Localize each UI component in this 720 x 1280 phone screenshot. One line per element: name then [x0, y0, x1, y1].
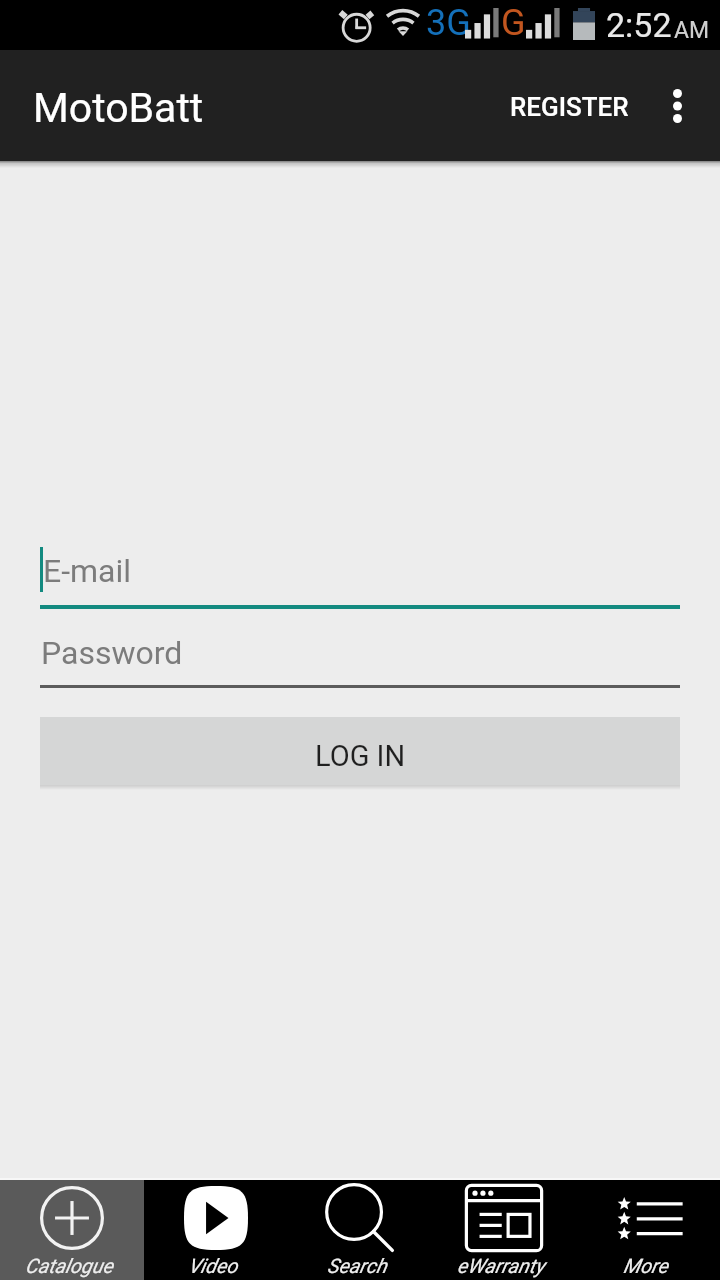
button[interactable]: Catalogue — [0, 1180, 144, 1280]
staticText: More — [623, 1254, 668, 1277]
staticText: AM — [674, 17, 710, 44]
button[interactable]: More — [576, 1180, 720, 1280]
button[interactable]: Search — [288, 1180, 432, 1280]
staticText: MotoBatt — [33, 84, 204, 132]
staticText: LOG IN — [315, 739, 406, 773]
button[interactable]: LOG IN — [40, 717, 680, 785]
staticText: Video — [188, 1254, 238, 1277]
staticText: 2:52 — [606, 5, 672, 45]
staticText: eWarranty — [457, 1254, 545, 1277]
staticText: 3G — [426, 2, 471, 44]
staticText: Catalogue — [25, 1254, 113, 1277]
button[interactable]: Video — [144, 1180, 288, 1280]
staticText: Password — [41, 634, 183, 672]
button[interactable]: REGISTER — [493, 51, 645, 162]
staticText: G — [501, 2, 526, 44]
staticText: Search — [327, 1254, 387, 1277]
staticText: E-mail — [43, 552, 132, 590]
staticText: REGISTER — [510, 92, 629, 122]
button[interactable]: More options — [637, 50, 718, 161]
button[interactable]: Password — [40, 620, 680, 688]
button[interactable]: E-mail — [40, 537, 680, 609]
button[interactable]: eWarranty — [432, 1180, 576, 1280]
